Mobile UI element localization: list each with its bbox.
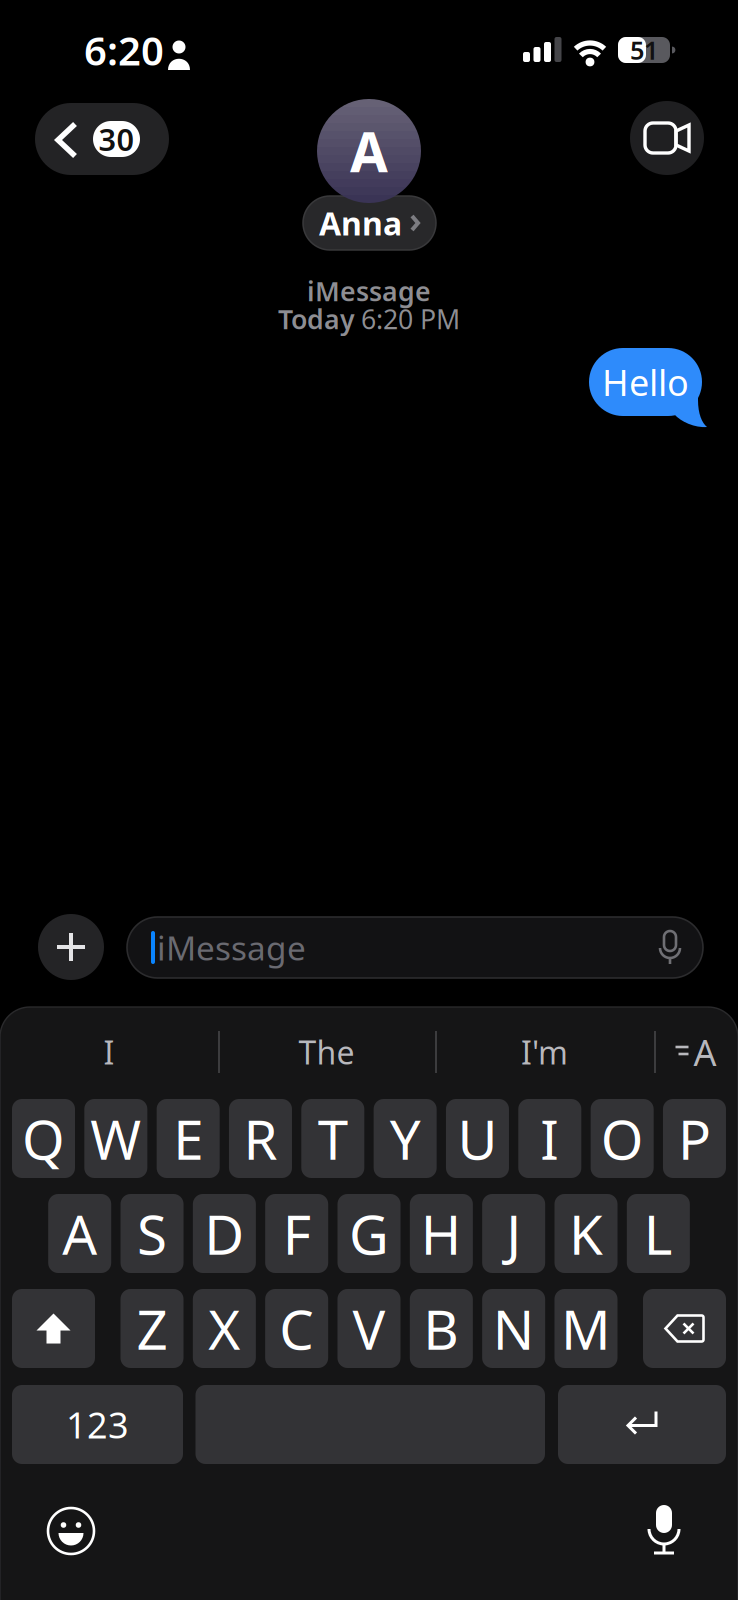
button[interactable]: Emoji: [48, 1508, 94, 1554]
button[interactable]: M: [554, 1289, 617, 1368]
staticText: T: [318, 1102, 348, 1175]
button[interactable]: Q: [12, 1099, 75, 1178]
staticText: iMessage: [157, 925, 306, 970]
button[interactable]: U: [446, 1099, 509, 1178]
staticText: Y: [390, 1102, 421, 1175]
button[interactable]: I: [0, 1021, 218, 1083]
button[interactable]: B: [410, 1289, 473, 1368]
button[interactable]: F: [265, 1194, 328, 1273]
button[interactable]: Autofill: [654, 1021, 738, 1083]
staticText: 123: [66, 1401, 129, 1448]
staticText: Today: [278, 301, 355, 337]
staticText: 51: [630, 33, 658, 67]
staticText: F: [283, 1197, 311, 1270]
button[interactable]: C: [265, 1289, 328, 1368]
staticText: Anna: [319, 202, 402, 244]
button[interactable]: V: [337, 1289, 400, 1368]
button[interactable]: H: [410, 1194, 473, 1273]
staticText: W: [90, 1102, 141, 1175]
button[interactable]: Return: [558, 1385, 726, 1464]
button[interactable]: Add attachment: [38, 914, 104, 980]
staticText: Hello: [602, 358, 689, 406]
button[interactable]: J: [482, 1194, 545, 1273]
button[interactable]: Shift: [12, 1289, 95, 1368]
button[interactable]: Dictation: [645, 1505, 683, 1555]
staticText: X: [208, 1292, 240, 1365]
button[interactable]: G: [337, 1194, 400, 1273]
button[interactable]: Y: [374, 1099, 437, 1178]
button[interactable]: K: [554, 1194, 617, 1273]
button[interactable]: A: [48, 1194, 111, 1273]
button[interactable]: X: [193, 1289, 256, 1368]
staticText: 6:20 PM: [361, 301, 460, 337]
button[interactable]: Numbers: [12, 1385, 183, 1464]
button[interactable]: Anna details: [303, 196, 436, 250]
staticText: A: [350, 115, 388, 187]
staticText: G: [349, 1197, 389, 1270]
button[interactable]: iMessage text field: [127, 917, 703, 978]
staticText: H: [421, 1197, 462, 1270]
button[interactable]: I: [518, 1099, 581, 1178]
button[interactable]: T: [301, 1099, 364, 1178]
staticText: E: [173, 1102, 203, 1175]
staticText: L: [644, 1197, 673, 1270]
button[interactable]: E: [157, 1099, 220, 1178]
button[interactable]: D: [193, 1194, 256, 1273]
staticText: S: [137, 1197, 167, 1270]
staticText: I: [540, 1102, 559, 1175]
staticText: I: [103, 1031, 114, 1073]
button[interactable]: I'm: [435, 1021, 654, 1083]
staticText: 30: [98, 119, 134, 159]
staticText: U: [457, 1102, 497, 1175]
button[interactable]: Back: [35, 103, 169, 175]
staticText: V: [352, 1292, 385, 1365]
staticText: iMessage: [307, 273, 431, 309]
button[interactable]: P: [663, 1099, 726, 1178]
button[interactable]: The: [218, 1021, 435, 1083]
staticText: P: [678, 1102, 711, 1175]
staticText: R: [243, 1102, 277, 1175]
button[interactable]: Delete: [643, 1289, 726, 1368]
staticText: B: [423, 1292, 459, 1365]
staticText: A: [693, 1028, 716, 1076]
button[interactable]: R: [229, 1099, 292, 1178]
staticText: I'm: [521, 1031, 568, 1073]
staticText: Q: [22, 1102, 65, 1175]
staticText: J: [506, 1197, 521, 1270]
staticText: D: [204, 1197, 244, 1270]
button[interactable]: W: [84, 1099, 147, 1178]
button[interactable]: FaceTime: [630, 101, 704, 175]
staticText: 6:20: [84, 23, 164, 76]
button[interactable]: L: [627, 1194, 690, 1273]
button[interactable]: O: [591, 1099, 654, 1178]
button[interactable]: Z: [120, 1289, 183, 1368]
staticText: Z: [136, 1292, 167, 1365]
staticText: C: [279, 1292, 314, 1365]
staticText: N: [493, 1292, 535, 1365]
staticText: K: [569, 1197, 603, 1270]
button[interactable]: N: [482, 1289, 545, 1368]
staticText: The: [298, 1031, 354, 1073]
staticText: M: [561, 1292, 611, 1365]
button[interactable]: S: [120, 1194, 183, 1273]
staticText: O: [601, 1102, 644, 1175]
staticText: A: [62, 1197, 97, 1270]
